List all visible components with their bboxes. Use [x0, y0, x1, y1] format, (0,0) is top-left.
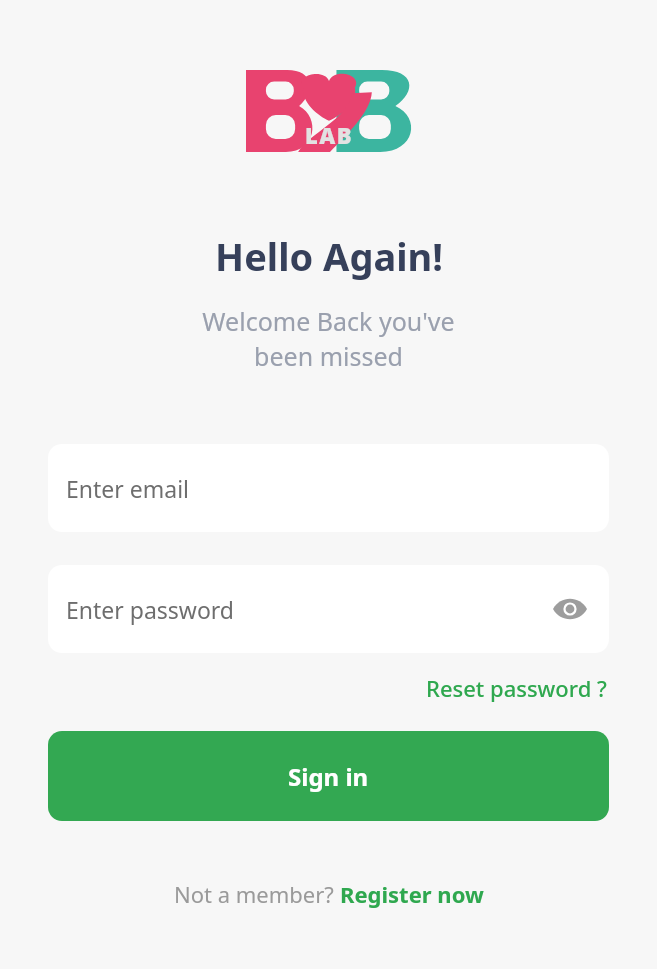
staticText: Sign in: [288, 760, 369, 793]
staticText: Enter email: [66, 473, 190, 504]
staticText: Register now: [340, 879, 484, 909]
button[interactable]: Register now: [340, 879, 484, 909]
button[interactable]: Show password: [547, 586, 593, 632]
staticText: Welcome Back you've been missed: [202, 304, 455, 374]
button[interactable]: Sign in: [48, 731, 609, 821]
staticText: Hello Again!: [215, 230, 443, 282]
staticText: Reset password ?: [426, 673, 607, 703]
staticText: LAB: [305, 120, 354, 150]
button[interactable]: Enter password: [48, 565, 609, 653]
button[interactable]: Enter email: [48, 444, 609, 532]
button[interactable]: Reset password ?: [424, 669, 609, 707]
staticText: Not a member?: [174, 879, 340, 909]
staticText: Enter password: [66, 594, 547, 625]
